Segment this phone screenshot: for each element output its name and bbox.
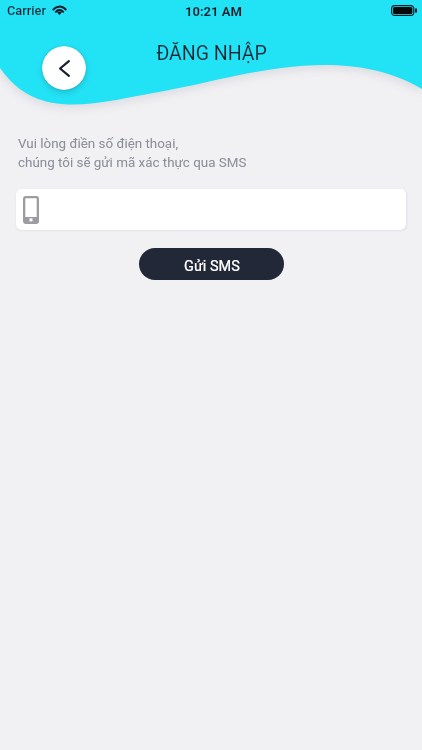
button[interactable]: Gửi SMS [139,248,284,280]
button[interactable] [16,189,406,230]
staticText: Vui lòng điền số điện thoại, chúng tôi s… [18,136,247,170]
staticText: ĐĂNG NHẬP [156,42,267,65]
staticText: 10:21 AM [185,4,242,19]
staticText: Carrier [7,3,46,18]
staticText: Gửi SMS [184,258,240,275]
button[interactable]: Back [42,46,86,90]
